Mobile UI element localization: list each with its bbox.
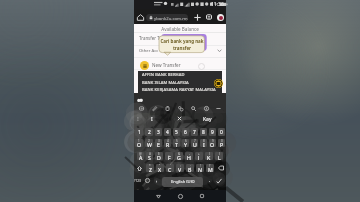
button[interactable]: 8 <box>200 128 207 136</box>
button[interactable]: @ <box>137 152 144 160</box>
button[interactable]: 3 <box>155 139 162 147</box>
staticText: Y <box>184 141 187 147</box>
button[interactable]: ybank2u.com.my <box>146 14 188 21</box>
button[interactable]: 6 <box>182 139 189 147</box>
staticText: " <box>159 164 161 168</box>
staticText: 2 <box>148 139 150 143</box>
button[interactable]: 1 <box>135 128 143 136</box>
button[interactable]: 7 <box>191 128 198 136</box>
button[interactable]: & <box>175 152 183 160</box>
button[interactable]: Tabs <box>204 12 214 22</box>
button[interactable]: Recent apps <box>197 191 207 201</box>
button[interactable]: New Transfer <box>134 59 226 71</box>
button[interactable]: Symbols <box>134 177 141 184</box>
button[interactable]: ; <box>186 164 194 172</box>
button[interactable]: $ <box>155 152 163 160</box>
staticText: AFFIN BANK BERHAD <box>142 72 185 78</box>
staticText: X <box>158 166 162 172</box>
button[interactable]: Shift <box>134 163 145 173</box>
button[interactable]: Back <box>153 191 163 201</box>
button[interactable]: 2 <box>145 128 153 136</box>
button[interactable]: 0 <box>218 139 225 147</box>
staticText: 7 <box>194 139 196 143</box>
staticText: * <box>149 164 151 168</box>
button[interactable]: New tab <box>192 12 202 22</box>
staticText: H <box>187 154 191 160</box>
button[interactable]: BANK ISLAM MALAYSIA <box>138 79 222 86</box>
staticText: _ <box>168 152 170 156</box>
button[interactable]: Themes <box>150 104 158 112</box>
button[interactable]: _ <box>165 152 173 160</box>
button[interactable]: 5 <box>173 128 180 136</box>
button[interactable]: 1 <box>135 139 143 147</box>
staticText: ? <box>209 164 211 168</box>
button[interactable]: Home <box>135 12 145 22</box>
staticText: Kay <box>203 116 212 123</box>
button[interactable]: Translate <box>176 104 184 112</box>
button[interactable]: Comma <box>153 177 160 184</box>
button[interactable]: * <box>146 164 154 172</box>
staticText: Z <box>149 166 152 172</box>
button[interactable]: Emoji <box>144 177 151 184</box>
button[interactable]: ? <box>206 164 214 172</box>
button[interactable]: : <box>176 164 184 172</box>
staticText: C <box>168 166 172 172</box>
button[interactable]: English (UK) <box>162 177 203 187</box>
button[interactable]: ' <box>166 164 174 172</box>
staticText: 8 <box>202 129 205 136</box>
staticText: 3 <box>157 129 160 136</box>
button[interactable]: Period <box>206 177 213 184</box>
button[interactable]: Search <box>189 104 197 112</box>
staticText: BANK ISLAM MALAYSIA <box>142 80 189 86</box>
staticText: New Transfer <box>152 62 181 68</box>
button[interactable]: 9 <box>209 128 216 136</box>
button[interactable]: + <box>195 152 203 160</box>
staticText: 1 <box>138 139 140 143</box>
button[interactable]: Gboard menu <box>136 96 143 103</box>
button[interactable]: # <box>146 152 153 160</box>
staticText: 3 <box>158 139 160 143</box>
button[interactable]: ) <box>215 152 223 160</box>
button[interactable]: 4 <box>164 139 171 147</box>
staticText: E <box>157 141 160 147</box>
staticText: G <box>177 154 181 160</box>
button[interactable]: 0 <box>218 128 225 136</box>
staticText: - <box>189 152 190 156</box>
staticText: V <box>178 166 182 172</box>
button[interactable]: Account <box>215 12 225 22</box>
button[interactable]: Settings <box>202 104 210 112</box>
button[interactable]: Expand <box>215 46 223 54</box>
button[interactable]: 5 <box>173 139 180 147</box>
button[interactable]: Enter <box>215 177 223 185</box>
button[interactable]: BANK KERJASAMA RAKYAT MALAYSIA <box>138 86 222 93</box>
button[interactable]: 7 <box>191 139 198 147</box>
staticText: 1 <box>138 129 141 136</box>
staticText: ( <box>209 152 210 156</box>
staticText: 4 <box>166 129 169 136</box>
button[interactable]: Clipboard <box>163 104 171 112</box>
button[interactable]: 3 <box>155 128 162 136</box>
button[interactable]: 9 <box>209 139 216 147</box>
button[interactable]: AFFIN BANK BERHAD <box>138 71 222 79</box>
button[interactable]: More options <box>214 104 222 112</box>
staticText: W <box>147 141 152 147</box>
staticText: 6 <box>185 139 187 143</box>
button[interactable]: ( <box>205 152 213 160</box>
staticText: 0 <box>220 129 223 136</box>
button[interactable]: ! <box>196 164 204 172</box>
button[interactable]: Stickers <box>137 104 145 112</box>
button[interactable]: 8 <box>200 139 207 147</box>
staticText: K <box>207 154 211 160</box>
button[interactable]: Backspace <box>215 163 226 173</box>
staticText: Available Balance <box>134 26 226 32</box>
button[interactable]: Assistant <box>214 79 223 88</box>
button[interactable]: " <box>156 164 164 172</box>
button[interactable]: Gboard menu <box>134 0 226 202</box>
button[interactable]: Home <box>175 191 185 201</box>
button[interactable]: 6 <box>182 128 189 136</box>
staticText: L <box>218 154 221 160</box>
button[interactable]: - <box>185 152 193 160</box>
button[interactable]: 2 <box>145 139 153 147</box>
button[interactable]: 4 <box>164 128 171 136</box>
staticText: : <box>180 164 181 168</box>
